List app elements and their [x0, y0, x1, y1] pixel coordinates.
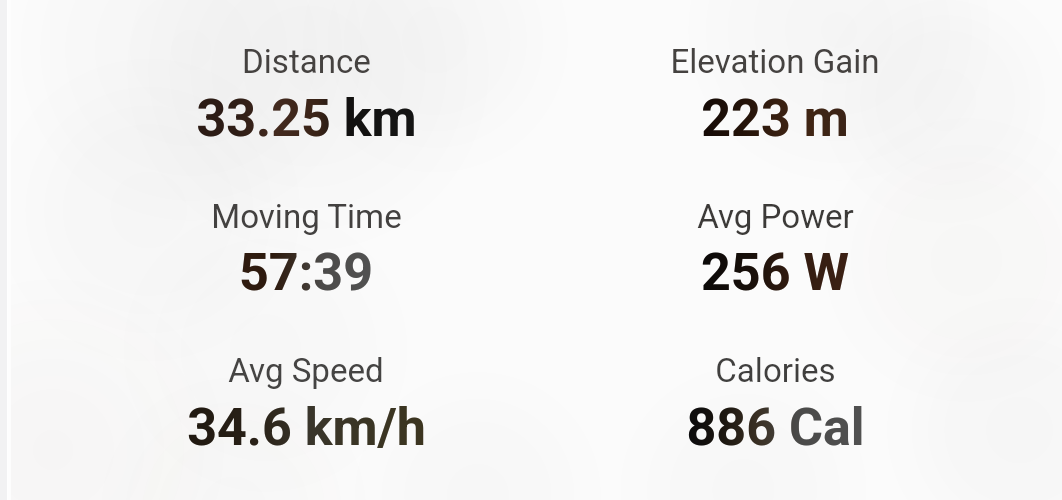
staticText: Calories: [715, 351, 836, 390]
staticText: 256 W: [701, 242, 849, 303]
button[interactable]: Avg Power: [697, 197, 854, 236]
button[interactable]: 57:39: [239, 242, 373, 303]
staticText: Avg Power: [697, 197, 854, 236]
staticText: 34.6 km/h: [187, 397, 426, 458]
button[interactable]: Calories: [715, 351, 836, 390]
button[interactable]: Distance: [242, 42, 371, 81]
staticText: Elevation Gain: [670, 42, 880, 81]
staticText: 886 Cal: [686, 397, 865, 458]
staticText: 223 m: [701, 88, 849, 149]
button[interactable]: 34.6 km/h: [187, 397, 426, 458]
staticText: Moving Time: [211, 197, 402, 236]
button[interactable]: Elevation Gain: [670, 42, 880, 81]
staticText: 33.25 km: [196, 88, 417, 149]
staticText: Avg Speed: [228, 351, 384, 390]
button[interactable]: 886 Cal: [686, 397, 865, 458]
button[interactable]: Avg Speed: [228, 351, 384, 390]
staticText: Distance: [242, 42, 371, 81]
staticText: 57:39: [239, 242, 373, 303]
button[interactable]: 223 m: [701, 88, 849, 149]
button[interactable]: 256 W: [701, 242, 849, 303]
button[interactable]: Moving Time: [211, 197, 402, 236]
button[interactable]: 33.25 km: [196, 88, 417, 149]
